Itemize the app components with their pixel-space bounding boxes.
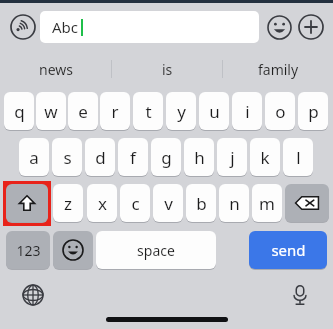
staticText: l — [296, 146, 301, 169]
staticText: j — [230, 146, 235, 169]
button[interactable]: o — [265, 92, 295, 130]
button[interactable]: space — [96, 231, 216, 269]
staticText: m — [259, 192, 275, 215]
staticText: e — [78, 100, 88, 123]
staticText: y — [177, 100, 186, 123]
button[interactable]: f — [118, 138, 148, 176]
button[interactable]: Voice typing — [285, 280, 315, 310]
staticText: is — [162, 60, 173, 79]
button[interactable]: g — [151, 138, 181, 176]
button[interactable]: Add attachment — [295, 11, 327, 43]
button[interactable]: y — [166, 92, 196, 130]
button[interactable]: w — [36, 92, 66, 130]
staticText: u — [209, 100, 220, 123]
staticText: n — [229, 192, 240, 215]
button[interactable]: Emoji keyboard — [53, 231, 93, 269]
staticText: v — [164, 192, 173, 215]
button[interactable]: r — [100, 92, 130, 130]
button[interactable]: send — [249, 231, 327, 269]
button[interactable]: v — [153, 184, 183, 222]
staticText: r — [111, 100, 119, 123]
staticText: f — [130, 146, 136, 169]
staticText: space — [137, 241, 175, 260]
button[interactable]: n — [219, 184, 249, 222]
button[interactable]: Abc — [40, 11, 259, 43]
button[interactable]: c — [120, 184, 150, 222]
button[interactable]: u — [199, 92, 229, 130]
button[interactable]: l — [283, 138, 313, 176]
button[interactable]: z — [53, 184, 83, 222]
staticText: z — [64, 192, 72, 215]
button[interactable]: q — [4, 92, 34, 130]
button[interactable]: j — [217, 138, 247, 176]
staticText: d — [95, 146, 106, 169]
staticText: i — [245, 100, 250, 123]
button[interactable]: a — [19, 138, 49, 176]
staticText: b — [196, 192, 207, 215]
button[interactable]: t — [133, 92, 163, 130]
button[interactable]: k — [250, 138, 280, 176]
button[interactable]: is — [112, 50, 222, 88]
button[interactable]: s — [52, 138, 82, 176]
staticText: c — [131, 192, 140, 215]
staticText: x — [98, 192, 107, 215]
staticText: news — [39, 60, 73, 79]
staticText: h — [194, 146, 205, 169]
button[interactable]: m — [252, 184, 282, 222]
staticText: a — [29, 146, 39, 169]
button[interactable]: i — [232, 92, 262, 130]
button[interactable]: Shift — [6, 184, 48, 222]
staticText: s — [63, 146, 72, 169]
button[interactable]: family — [223, 50, 333, 88]
button[interactable]: b — [186, 184, 216, 222]
button[interactable]: d — [85, 138, 115, 176]
staticText: family — [258, 60, 299, 79]
button[interactable]: Voice input — [6, 10, 40, 44]
staticText: k — [260, 146, 270, 169]
button[interactable]: Emoji — [263, 11, 295, 43]
button[interactable]: p — [298, 92, 328, 130]
staticText: o — [275, 100, 286, 123]
staticText: q — [14, 100, 25, 123]
staticText: p — [308, 100, 319, 123]
staticText: t — [145, 100, 152, 123]
button[interactable]: e — [68, 92, 98, 130]
button[interactable]: x — [87, 184, 117, 222]
staticText: w — [44, 100, 58, 123]
staticText: Abc — [52, 17, 79, 37]
staticText: send — [271, 240, 306, 260]
staticText: 123 — [16, 241, 41, 260]
staticText: g — [161, 146, 172, 169]
button[interactable]: Change keyboard language — [18, 280, 48, 310]
button[interactable]: Numbers — [6, 231, 50, 269]
button[interactable]: Backspace — [285, 184, 329, 222]
button[interactable]: news — [0, 50, 111, 88]
button[interactable]: h — [184, 138, 214, 176]
